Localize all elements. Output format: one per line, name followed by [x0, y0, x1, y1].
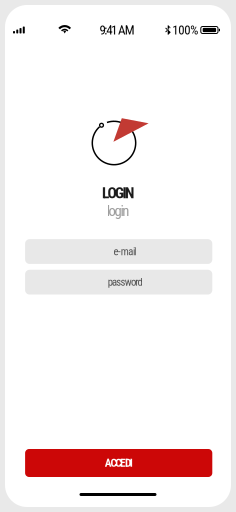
button[interactable]: password	[25, 270, 212, 295]
button[interactable]: ACCEDI	[25, 449, 212, 477]
staticText: e-mail	[113, 245, 136, 258]
staticText: LOGIN	[102, 184, 134, 202]
staticText: login	[107, 202, 129, 220]
button[interactable]: e-mail	[25, 239, 212, 264]
staticText: 100%	[172, 22, 198, 37]
staticText: ACCEDI	[105, 456, 133, 470]
staticText: password	[108, 276, 142, 288]
staticText: 9:41 AM	[99, 22, 135, 38]
